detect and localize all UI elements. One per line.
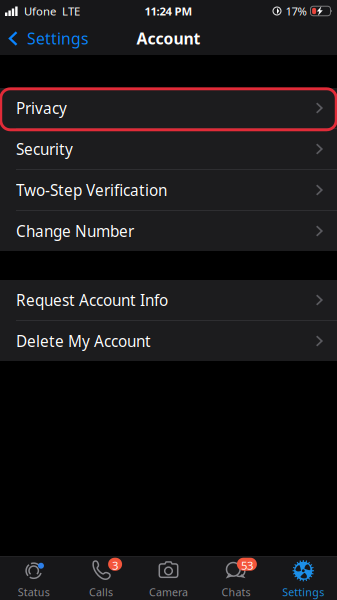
button[interactable]: Delete My Account bbox=[0, 321, 337, 361]
staticText: Settings bbox=[27, 28, 89, 49]
staticText: 17% bbox=[285, 3, 306, 19]
staticText: Settings bbox=[282, 585, 324, 599]
staticText: Ufone bbox=[24, 3, 56, 19]
staticText: 53 bbox=[241, 558, 253, 571]
staticText: 11:24 PM bbox=[144, 3, 192, 19]
staticText: Request Account Info bbox=[16, 290, 168, 310]
button[interactable]: Change Number bbox=[0, 211, 337, 251]
button[interactable]: Settings bbox=[0, 22, 99, 55]
staticText: 3 bbox=[112, 558, 118, 571]
button[interactable]: Two-Step Verification bbox=[0, 170, 337, 210]
button[interactable]: Status bbox=[0, 556, 67, 600]
button[interactable]: 3 bbox=[67, 556, 135, 600]
button[interactable]: Camera bbox=[135, 556, 202, 600]
staticText: Privacy bbox=[16, 98, 67, 118]
staticText: Two-Step Verification bbox=[16, 180, 167, 200]
staticText: Delete My Account bbox=[16, 331, 151, 351]
staticText: Security bbox=[16, 139, 73, 159]
staticText: Status bbox=[18, 585, 50, 599]
button[interactable]: Privacy bbox=[0, 88, 337, 128]
button[interactable]: Request Account Info bbox=[0, 280, 337, 320]
staticText: Camera bbox=[149, 585, 188, 599]
staticText: Change Number bbox=[16, 221, 134, 241]
button[interactable]: 53 bbox=[202, 556, 270, 600]
staticText: LTE bbox=[62, 3, 80, 19]
staticText: Chats bbox=[221, 585, 250, 599]
staticText: Calls bbox=[89, 585, 113, 599]
button[interactable]: Settings bbox=[270, 556, 337, 600]
button[interactable]: Security bbox=[0, 129, 337, 169]
staticText: Account bbox=[136, 28, 200, 49]
